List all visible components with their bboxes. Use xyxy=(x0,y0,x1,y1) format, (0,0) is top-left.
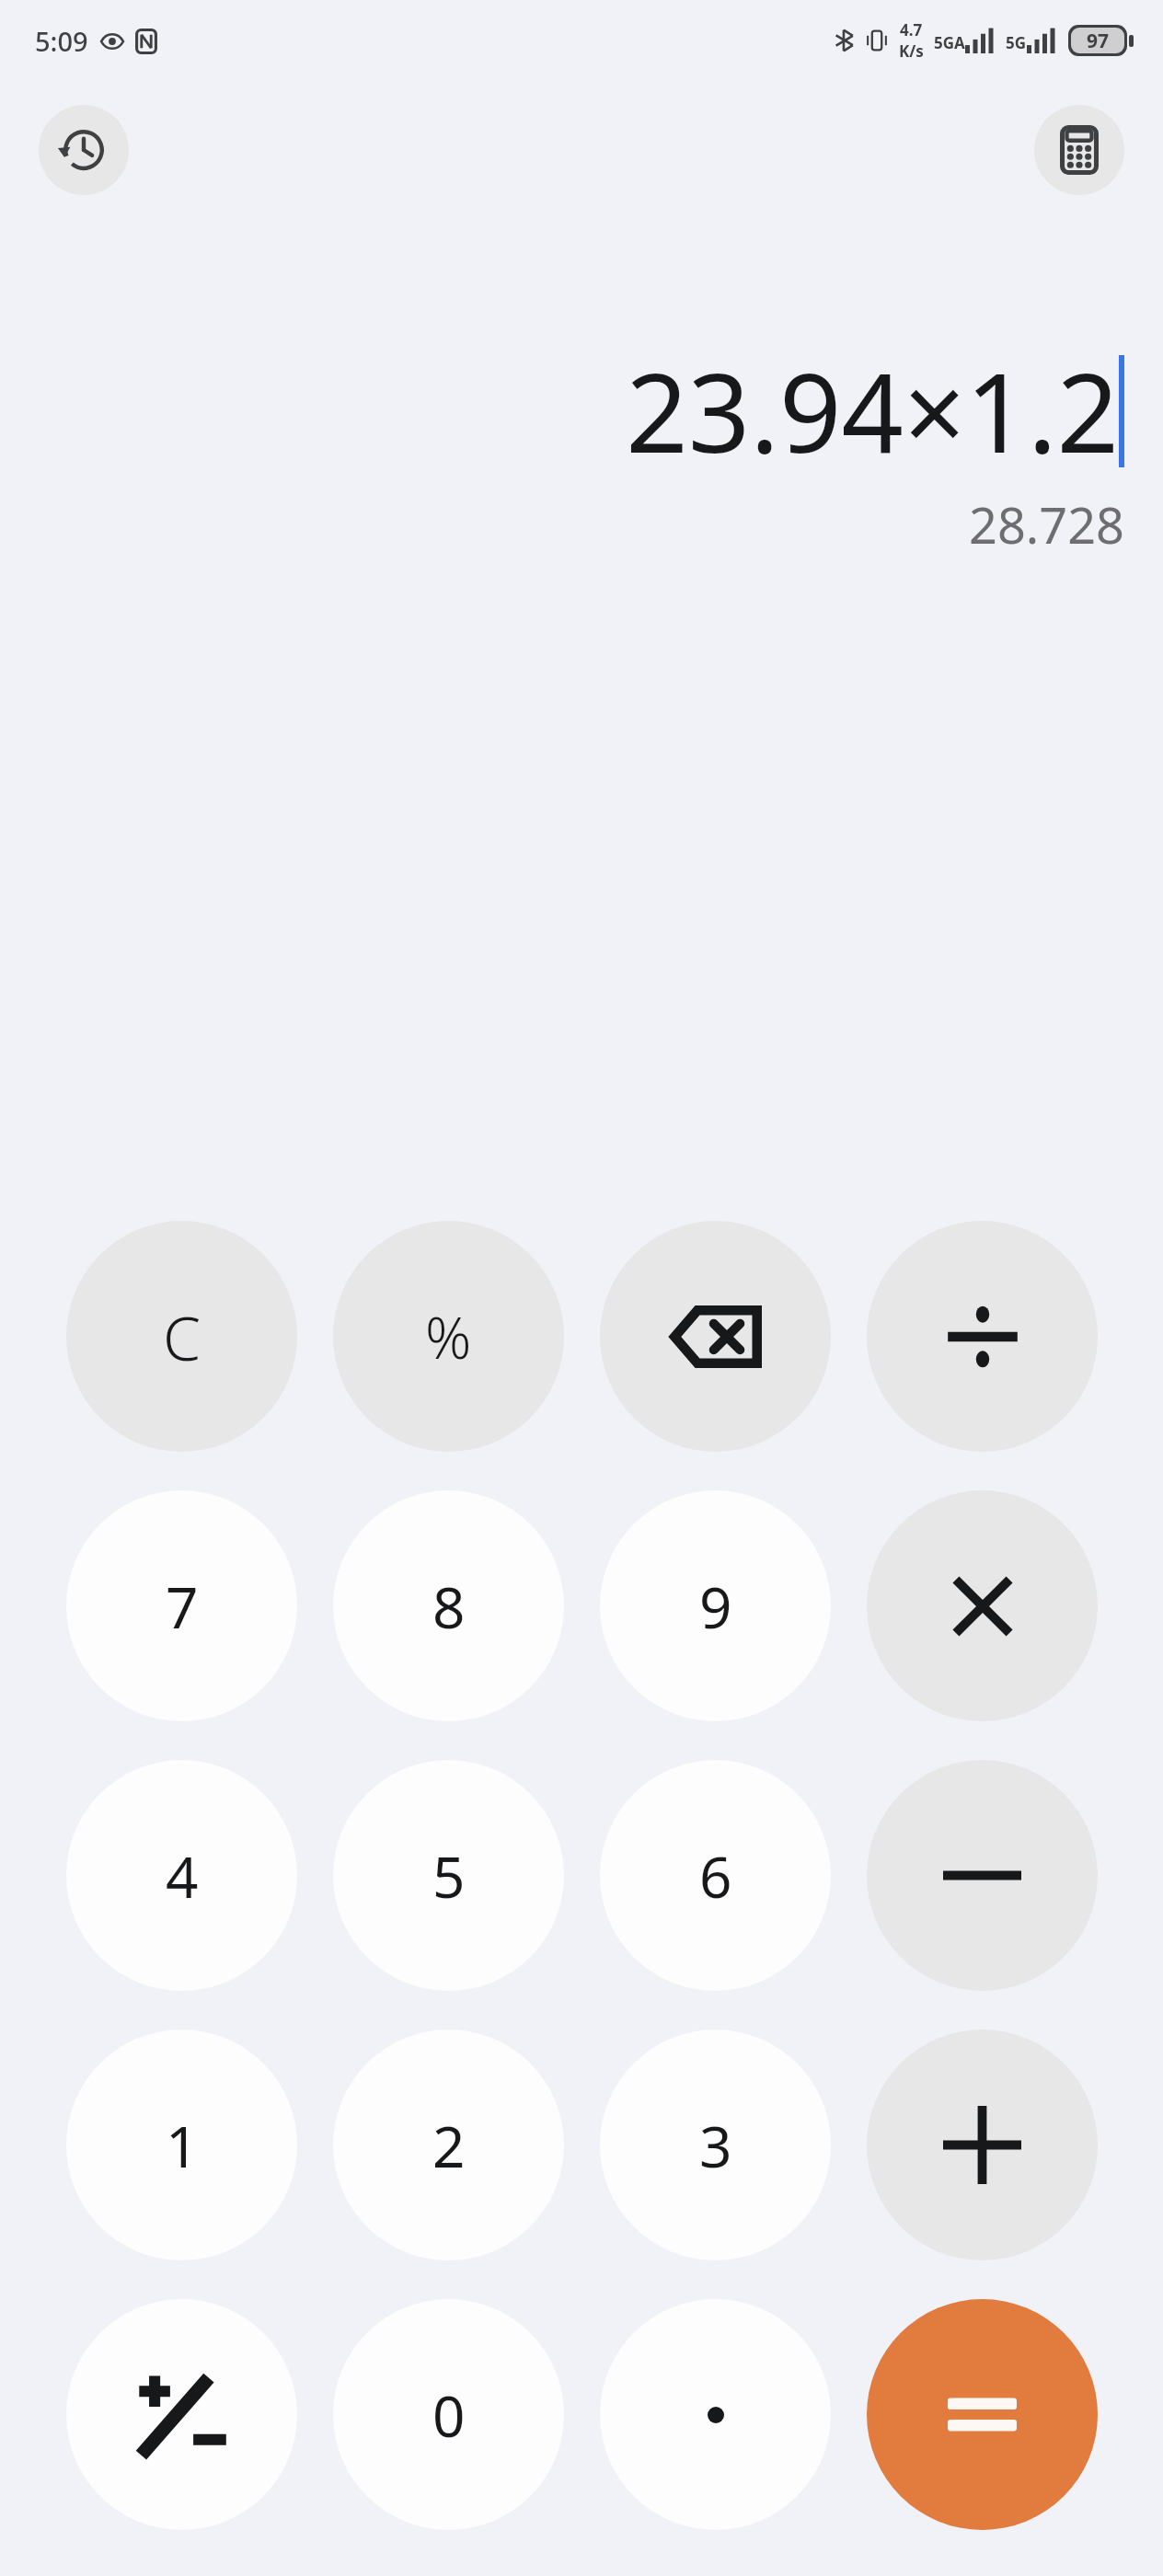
staticText: 4.7 xyxy=(900,19,923,40)
button[interactable]: 8 xyxy=(333,1490,564,1721)
staticText: 5G xyxy=(1006,32,1027,53)
staticText: 5GA xyxy=(934,32,965,53)
button[interactable]: 3 xyxy=(600,2030,831,2260)
staticText: C xyxy=(163,1295,202,1378)
button[interactable]: Equals xyxy=(867,2299,1098,2530)
button[interactable]: 1 xyxy=(66,2030,297,2260)
button[interactable]: 7 xyxy=(66,1490,297,1721)
staticText: 5:09 xyxy=(35,23,88,59)
button[interactable]: 2 xyxy=(333,2030,564,2260)
button[interactable]: Divide xyxy=(867,1221,1098,1452)
button[interactable]: 5 xyxy=(333,1760,564,1991)
button[interactable]: Calculator mode xyxy=(1034,105,1124,195)
button[interactable]: Percent xyxy=(333,1221,564,1452)
button[interactable]: Plus minus xyxy=(66,2299,297,2530)
button[interactable]: 4 xyxy=(66,1760,297,1991)
staticText: 28.728 xyxy=(969,490,1124,558)
button[interactable]: Decimal point xyxy=(600,2299,831,2530)
staticText: 1 xyxy=(166,2107,199,2184)
staticText: 8 xyxy=(432,1568,466,1645)
staticText: 2 xyxy=(432,2107,466,2184)
staticText: 6 xyxy=(699,1837,732,1915)
staticText: 4 xyxy=(166,1837,199,1915)
button[interactable]: 6 xyxy=(600,1760,831,1991)
button[interactable]: 0 xyxy=(333,2299,564,2530)
button[interactable]: Backspace xyxy=(600,1221,831,1452)
staticText: 97 xyxy=(1087,28,1110,53)
staticText: 23.94×1.2 xyxy=(626,337,1119,485)
staticText: 7 xyxy=(166,1568,199,1645)
button[interactable]: History xyxy=(39,105,129,195)
staticText: % xyxy=(425,1298,472,1375)
staticText: 0 xyxy=(432,2376,466,2454)
staticText: 3 xyxy=(699,2107,732,2184)
button[interactable]: 9 xyxy=(600,1490,831,1721)
staticText: K/s xyxy=(899,40,924,62)
button[interactable]: Multiply xyxy=(867,1490,1098,1721)
button[interactable]: Minus xyxy=(867,1760,1098,1991)
button[interactable]: Plus xyxy=(867,2030,1098,2260)
staticText: 9 xyxy=(699,1568,732,1645)
staticText: 5 xyxy=(432,1837,466,1915)
button[interactable]: Clear xyxy=(66,1221,297,1452)
